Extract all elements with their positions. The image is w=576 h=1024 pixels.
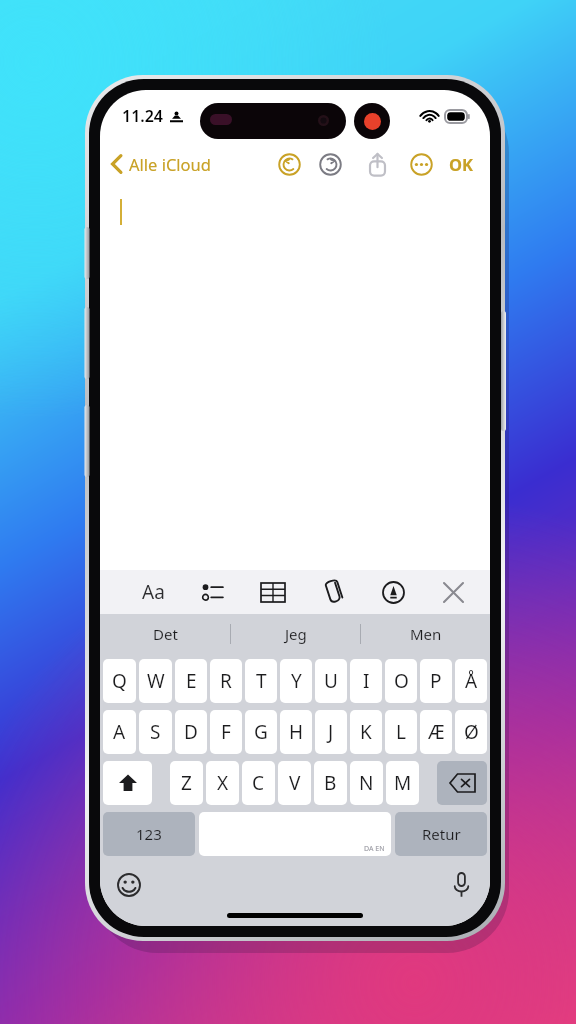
staticText: Ø [464,719,479,745]
button[interactable]: K [350,710,382,754]
button[interactable]: Alle iCloud [110,153,211,175]
button[interactable]: L [385,710,417,754]
staticText: K [360,719,372,745]
button[interactable]: G [245,710,277,754]
button[interactable]: I [350,659,382,703]
button[interactable]: Markup [374,573,412,611]
staticText: Retur [422,824,461,844]
button[interactable]: Å [455,659,487,703]
button[interactable]: Table [254,573,292,611]
staticText: E [186,668,197,694]
button[interactable]: Det [100,614,230,654]
button[interactable]: D [175,710,207,754]
staticText: S [150,719,161,745]
button[interactable]: Undo [274,149,304,179]
staticText: Jeg [285,624,307,644]
button[interactable]: Z [170,761,203,805]
button[interactable]: V [278,761,311,805]
button[interactable]: Share [362,149,392,179]
button[interactable]: Emoji [114,870,144,900]
staticText: J [328,719,334,745]
staticText: P [430,668,442,694]
button[interactable]: OK [447,153,476,175]
staticText: N [359,770,374,796]
staticText: Det [153,624,178,644]
button[interactable]: E [175,659,207,703]
button[interactable]: Men [361,614,490,654]
staticText: Æ [428,719,445,745]
button[interactable]: Close keyboard [434,573,472,611]
button[interactable]: X [206,761,239,805]
button[interactable]: Shift [103,761,152,805]
staticText: Å [465,668,478,694]
button[interactable]: S [139,710,172,754]
button[interactable]: A [103,710,136,754]
staticText: M [394,770,412,796]
button[interactable]: U [315,659,347,703]
button[interactable]: H [280,710,312,754]
button[interactable]: Backspace [437,761,487,805]
button[interactable]: P [420,659,452,703]
button[interactable]: M [386,761,419,805]
button[interactable]: F [210,710,242,754]
button[interactable]: J [315,710,347,754]
staticText: 123 [136,824,162,844]
button[interactable]: Checklist [194,573,232,611]
button[interactable]: Attach [314,573,352,611]
button[interactable]: Æ [420,710,452,754]
button[interactable]: Space [199,812,391,856]
button[interactable]: Ø [455,710,487,754]
button[interactable]: Y [280,659,312,703]
staticText: Alle iCloud [129,153,211,175]
staticText: Q [112,668,127,694]
button[interactable]: 123 [103,812,195,856]
button[interactable]: Redo [315,149,345,179]
staticText: O [394,668,409,694]
button[interactable]: N [350,761,383,805]
staticText: R [220,668,232,694]
staticText: DA EN [364,844,385,854]
staticText: B [324,770,337,796]
staticText: I [363,668,370,694]
staticText: F [221,719,231,745]
staticText: Men [410,624,442,644]
button[interactable]: Retur [395,812,487,856]
staticText: Y [291,668,302,694]
staticText: G [254,719,268,745]
staticText: A [113,719,126,745]
staticText: D [184,719,198,745]
staticText: Aa [142,579,165,605]
button[interactable]: T [245,659,277,703]
button[interactable]: Dictation [446,870,476,900]
staticText: 11.24 [122,105,164,127]
button[interactable]: Jeg [231,614,360,654]
button[interactable]: B [314,761,347,805]
button[interactable]: W [139,659,172,703]
staticText: C [252,770,265,796]
button[interactable]: More [406,149,436,179]
staticText: U [324,668,338,694]
button[interactable]: Q [103,659,136,703]
button[interactable]: C [242,761,275,805]
staticText: OK [449,153,474,175]
staticText: H [289,719,304,745]
staticText: W [147,668,165,694]
button[interactable]: O [385,659,417,703]
button[interactable]: R [210,659,242,703]
staticText: X [217,770,229,796]
button[interactable]: Text format [134,573,172,611]
staticText: V [289,770,301,796]
staticText: L [396,719,406,745]
staticText: T [256,668,267,694]
staticText: Z [181,770,192,796]
